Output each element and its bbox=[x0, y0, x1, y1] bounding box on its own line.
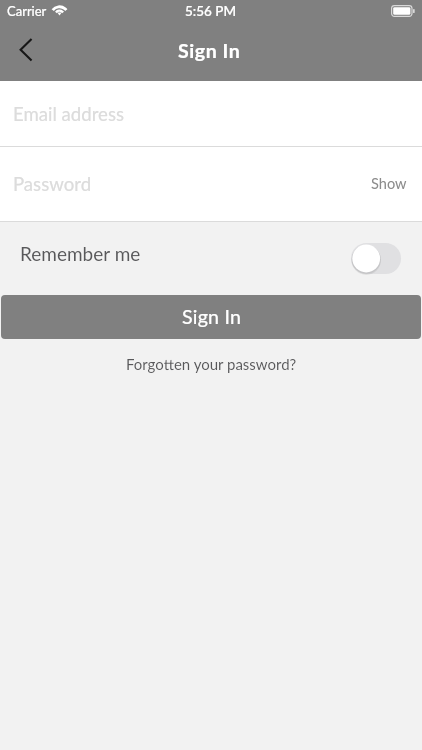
button[interactable]: Remember me toggle bbox=[351, 243, 401, 274]
staticText: Remember me bbox=[20, 242, 141, 265]
button[interactable]: Show bbox=[357, 147, 422, 221]
button[interactable]: Sign In bbox=[1, 295, 421, 339]
button[interactable]: Email address bbox=[0, 81, 422, 146]
staticText: Email address bbox=[13, 103, 124, 125]
staticText: Show bbox=[371, 175, 407, 193]
staticText: Sign In bbox=[178, 39, 241, 63]
staticText: Sign In bbox=[182, 305, 242, 329]
button[interactable]: Back bbox=[6, 35, 46, 75]
staticText: 5:56 PM bbox=[185, 3, 237, 19]
staticText: Forgotten your password? bbox=[126, 355, 297, 373]
button[interactable] bbox=[0, 147, 422, 221]
staticText: Password bbox=[13, 173, 92, 195]
staticText: Carrier bbox=[7, 3, 47, 19]
button[interactable]: Forgotten your password? bbox=[114, 351, 309, 377]
